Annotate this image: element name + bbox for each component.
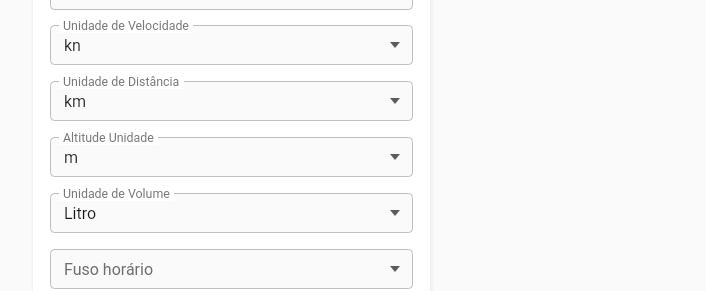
staticText: kn <box>64 36 81 55</box>
staticText: Unidade de Volume <box>63 186 170 201</box>
staticText: Altitude Unidade <box>63 130 154 145</box>
button[interactable]: Unidade de Volume <box>50 193 413 233</box>
staticText: Fuso horário <box>64 260 154 279</box>
button[interactable]: Expandir Unidade de Volume <box>385 203 405 223</box>
staticText: Litro <box>64 204 97 223</box>
staticText: m <box>64 148 79 167</box>
button[interactable]: Unidade de Hora <box>50 0 413 10</box>
staticText: Unidade de Distância <box>63 74 180 89</box>
button[interactable]: Expandir Fuso horário <box>385 259 405 279</box>
button[interactable]: Altitude Unidade <box>50 137 413 177</box>
button[interactable]: Expandir Altitude Unidade <box>385 147 405 167</box>
staticText: Unidade de Velocidade <box>63 18 189 33</box>
button[interactable]: Expandir Unidade de Velocidade <box>385 35 405 55</box>
button[interactable]: Expandir Unidade de Distância <box>385 91 405 111</box>
button[interactable]: Unidade de Distância <box>50 81 413 121</box>
button[interactable]: Fuso horário <box>50 249 413 289</box>
button[interactable]: Unidade de Velocidade <box>50 25 413 65</box>
staticText: km <box>64 92 87 111</box>
